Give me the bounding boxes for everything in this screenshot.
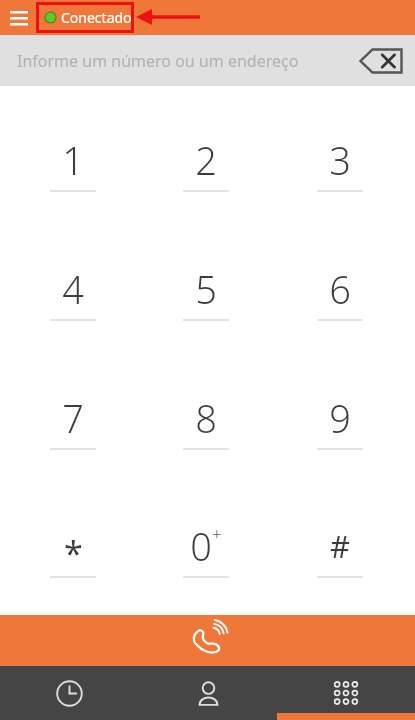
button[interactable]: 2 xyxy=(146,132,266,227)
button[interactable]: Call xyxy=(0,615,415,666)
staticText: * xyxy=(64,530,83,576)
staticText: 4 xyxy=(62,263,84,315)
button[interactable]: 0 xyxy=(146,518,266,613)
staticText: Conectado xyxy=(61,8,132,27)
button[interactable]: 6 xyxy=(280,261,400,356)
button[interactable]: 3 xyxy=(280,132,400,227)
button[interactable]: 5 xyxy=(146,261,266,356)
staticText: 1 xyxy=(62,134,84,186)
button[interactable]: 8 xyxy=(146,390,266,485)
button[interactable]: 7 xyxy=(13,390,133,485)
button[interactable]: 1 xyxy=(13,132,133,227)
staticText: 0 xyxy=(190,520,212,572)
staticText: 6 xyxy=(329,263,351,315)
button[interactable]: Menu xyxy=(4,4,33,31)
staticText: 3 xyxy=(329,134,351,186)
button[interactable]: Backspace xyxy=(355,41,407,81)
button[interactable]: # xyxy=(280,518,400,613)
button[interactable]: Informe um número ou um endereço xyxy=(0,35,415,86)
button[interactable]: 4 xyxy=(13,261,133,356)
staticText: Informe um número ou um endereço xyxy=(17,50,299,72)
button[interactable]: Contacts xyxy=(139,666,277,720)
staticText: 9 xyxy=(329,392,351,444)
staticText: 2 xyxy=(195,134,217,186)
button[interactable]: Conectado xyxy=(36,2,134,33)
button[interactable]: 9 xyxy=(280,390,400,485)
button[interactable]: Keypad xyxy=(277,666,415,720)
staticText: 8 xyxy=(195,392,217,444)
button[interactable]: Recents xyxy=(0,666,138,720)
staticText: # xyxy=(330,525,351,567)
staticText: 7 xyxy=(62,392,84,444)
staticText: 5 xyxy=(195,263,217,315)
button[interactable]: * xyxy=(13,518,133,613)
staticText: + xyxy=(212,522,222,545)
